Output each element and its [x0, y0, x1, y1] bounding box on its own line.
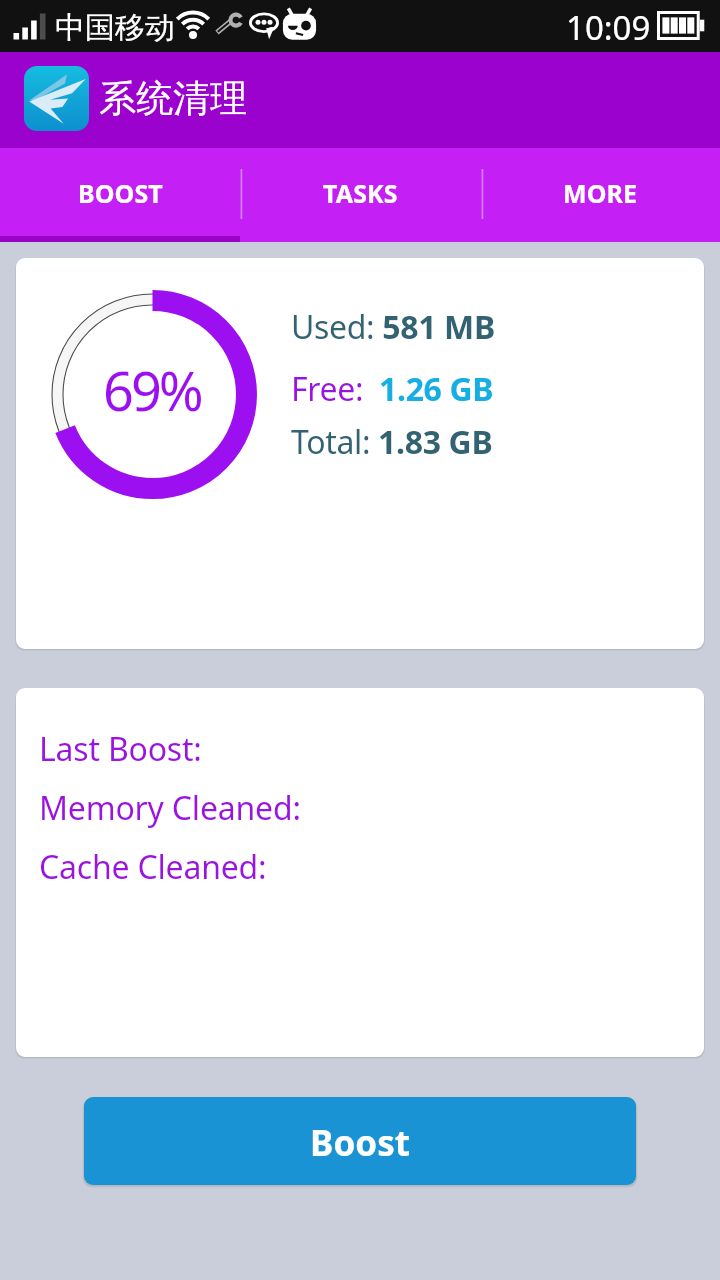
- staticText: 系统清理: [99, 75, 247, 122]
- staticText: TASKS: [323, 176, 398, 210]
- staticText: BOOST: [78, 176, 163, 210]
- staticText: Cache Cleaned:: [39, 845, 267, 889]
- staticText: Total: 1.83 GB: [291, 420, 493, 464]
- staticText: MORE: [563, 176, 638, 210]
- button[interactable]: MORE: [480, 145, 720, 242]
- staticText: Memory Cleaned:: [39, 786, 301, 830]
- staticText: 69%: [103, 353, 201, 427]
- staticText: 10:09: [566, 5, 651, 50]
- staticText: Boost: [310, 1119, 410, 1167]
- button[interactable]: System Cleaner app icon: [24, 66, 89, 131]
- staticText: Last Boost:: [39, 727, 202, 771]
- staticText: 中国移动: [55, 9, 175, 47]
- button[interactable]: BOOST: [0, 145, 240, 242]
- staticText: Free: 1.26 GB: [291, 367, 494, 411]
- staticText: Used: 581 MB: [291, 305, 495, 349]
- button[interactable]: Boost: [84, 1097, 636, 1185]
- button[interactable]: TASKS: [240, 145, 480, 242]
